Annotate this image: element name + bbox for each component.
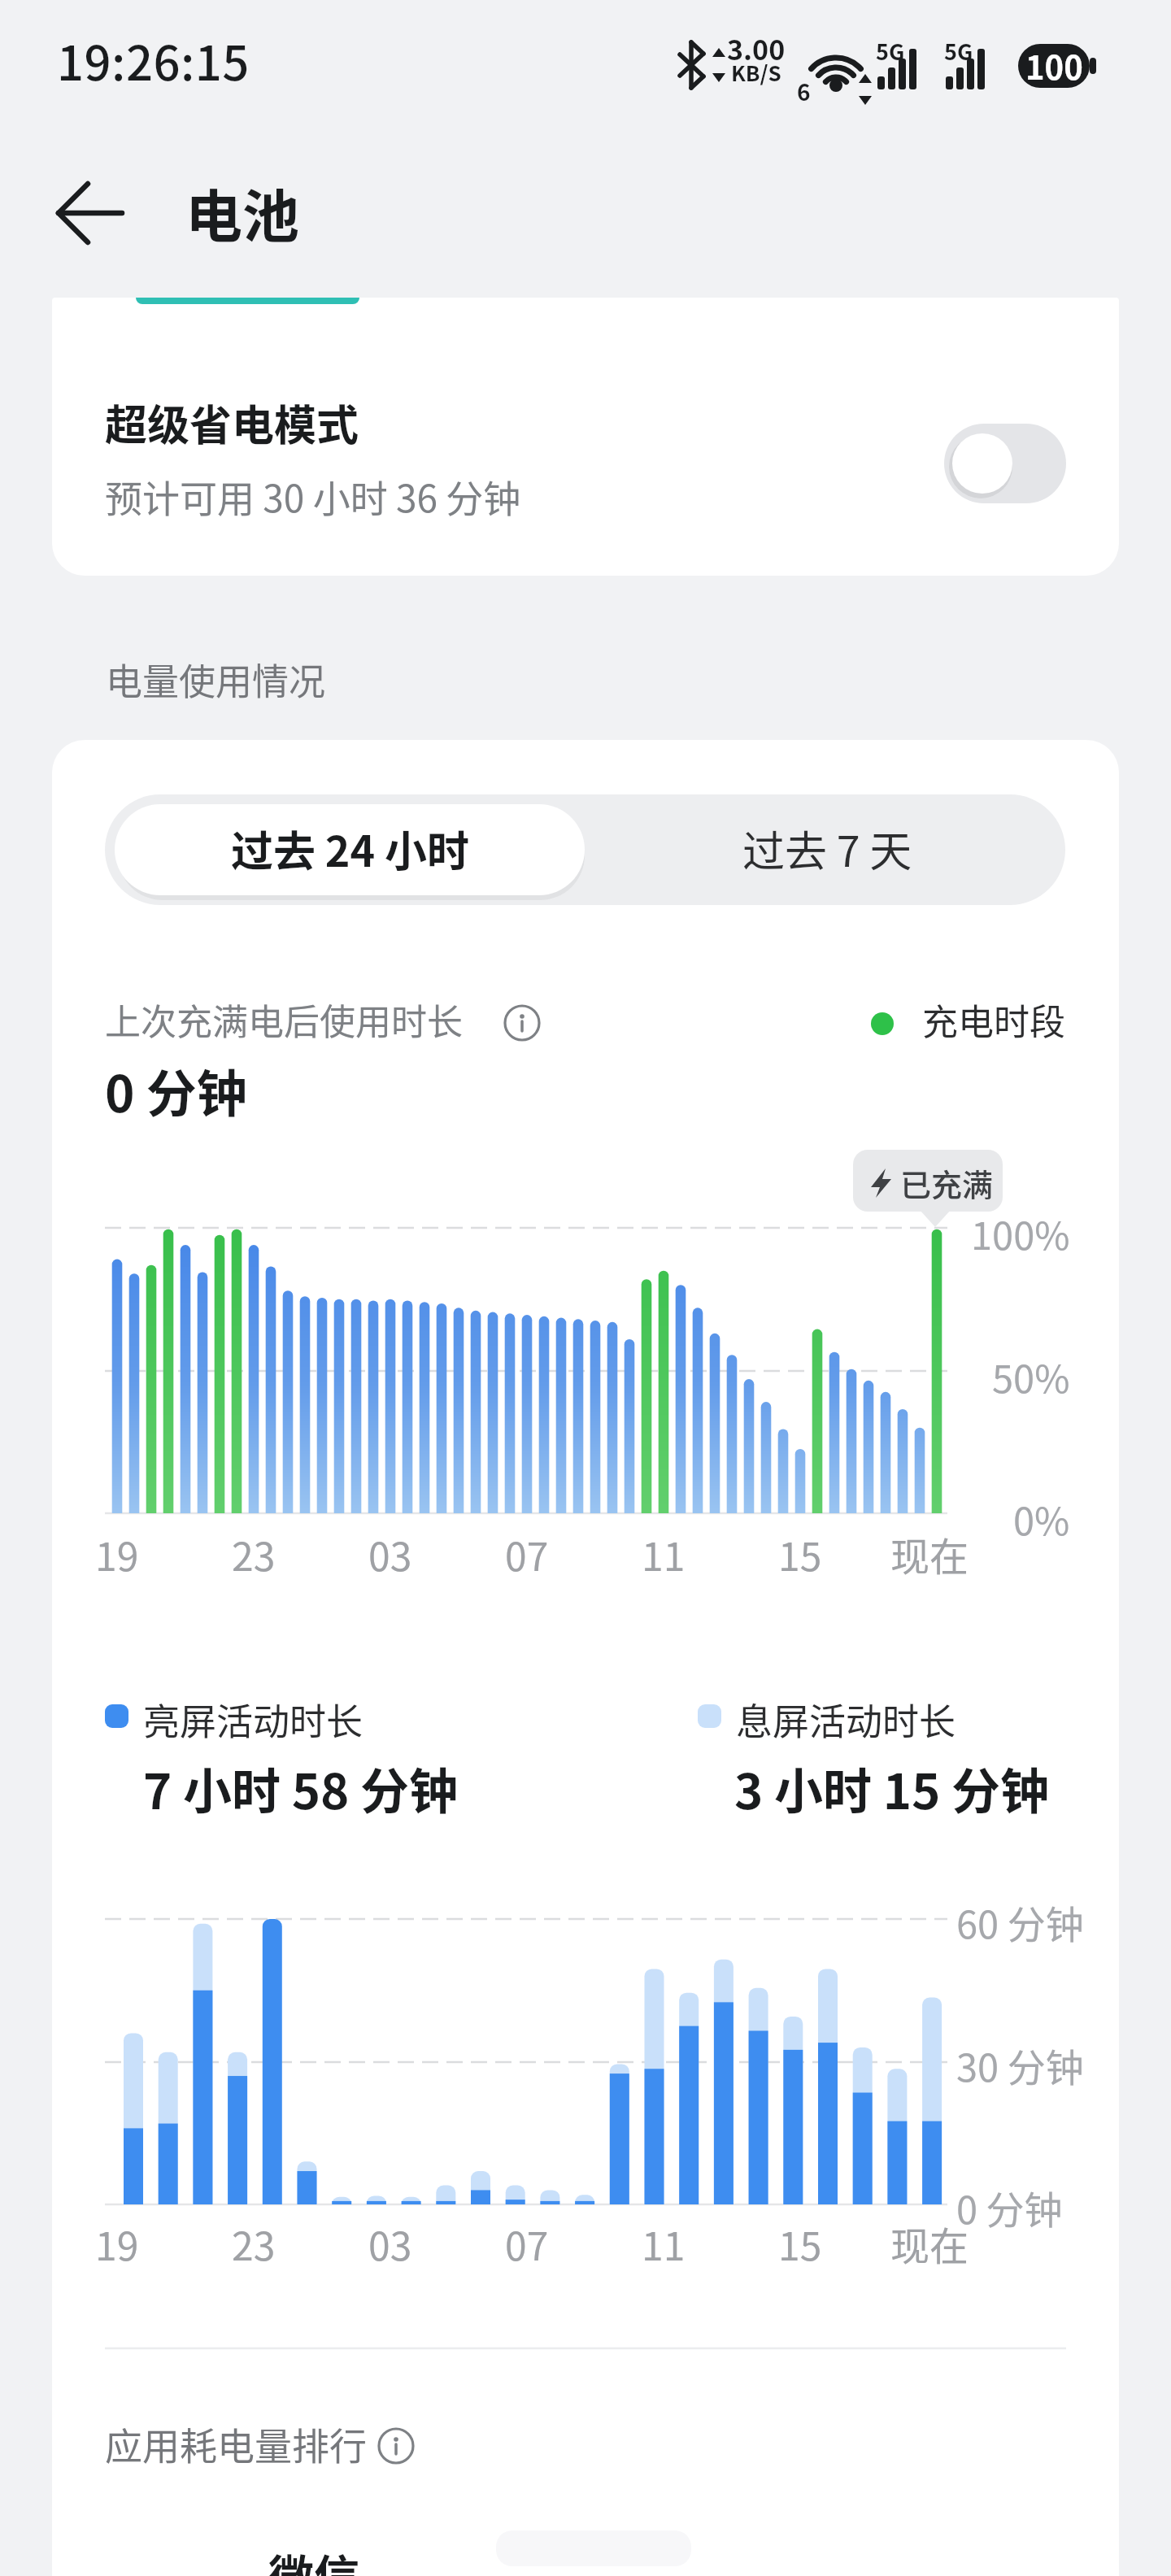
staticText: 15 [778, 2215, 822, 2272]
staticText: 0 分钟 [956, 2179, 1063, 2234]
staticText: 息屏活动时长 [736, 1693, 956, 1746]
staticText: 超级省电模式 [105, 392, 359, 453]
staticText: 15 [778, 1525, 822, 1582]
staticText: 0% [1013, 1490, 1070, 1546]
staticText: 应用耗电量排行 [105, 2417, 367, 2471]
staticText: 03 [368, 2215, 412, 2272]
staticText: KB/S [731, 57, 781, 88]
staticText: 已充满 [900, 1160, 994, 1205]
staticText: 19 [95, 2215, 139, 2272]
staticText: 60 分钟 [956, 1894, 1084, 1949]
staticText: 电量使用情况 [106, 653, 326, 706]
staticText: 100 [1025, 42, 1083, 89]
staticText: 19 [95, 1525, 139, 1582]
staticText: 07 [505, 2215, 549, 2272]
staticText: 亮屏活动时长 [143, 1693, 363, 1746]
staticText: 03 [368, 1525, 412, 1582]
staticText: 19:26:15 [57, 26, 250, 94]
staticText: 5G [876, 35, 905, 67]
staticText: 过去 7 天 [742, 818, 912, 879]
staticText: 50% [992, 1348, 1070, 1403]
staticText: 微信 [268, 2540, 359, 2576]
staticText: 23 [232, 1525, 276, 1582]
staticText: 0 分钟 [105, 1054, 247, 1127]
staticText: 30 分钟 [956, 2037, 1084, 2092]
staticText: 电池 [185, 172, 299, 254]
staticText: 5G [944, 35, 973, 67]
staticText: 11 [642, 1525, 686, 1582]
staticText: 100% [971, 1205, 1070, 1260]
staticText: 现在 [890, 1525, 969, 1582]
staticText: 上次充满电后使用时长 [105, 994, 463, 1046]
staticText: 07 [505, 1525, 549, 1582]
staticText: 6 [797, 75, 811, 108]
staticText: 现在 [890, 2215, 969, 2272]
staticText: 3 小时 15 分钟 [734, 1752, 1050, 1823]
staticText: 11 [642, 2215, 686, 2272]
staticText: 预计可用 30 小时 36 分钟 [105, 469, 521, 524]
staticText: 3.00 [727, 28, 786, 68]
staticText: 过去 24 小时 [231, 818, 469, 879]
staticText: 7 小时 58 分钟 [143, 1752, 459, 1823]
staticText: 23 [232, 2215, 276, 2272]
staticText: 充电时段 [922, 994, 1065, 1046]
